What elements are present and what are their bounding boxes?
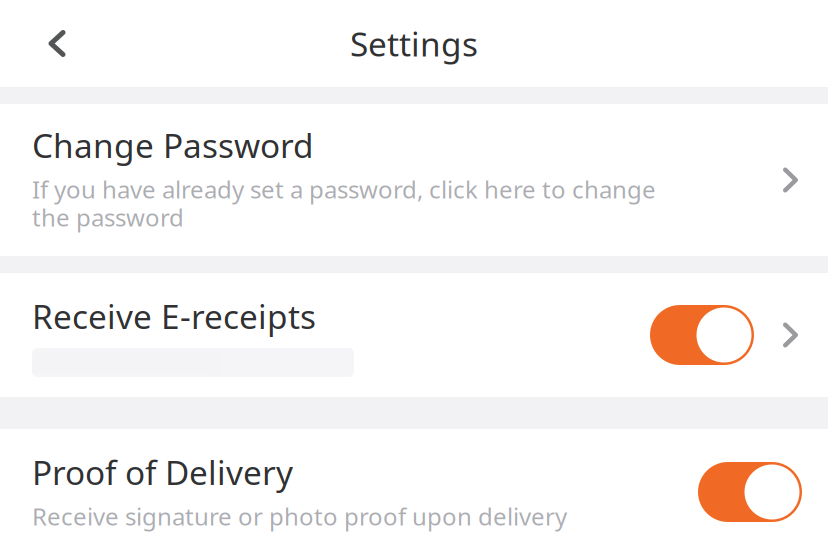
staticText: Change Password: [32, 123, 314, 167]
staticText: Receive E-receipts: [32, 294, 316, 338]
staticText: Receive signature or photo proof upon de…: [32, 500, 567, 532]
button[interactable]: Receive E-receipts, on: [650, 305, 754, 365]
staticText: If you have already set a password, clic…: [32, 173, 656, 233]
staticText: Proof of Delivery: [32, 450, 293, 494]
button[interactable]: Receive E-receipts: [0, 273, 828, 397]
button[interactable]: Back: [29, 13, 85, 73]
button[interactable]: Change Password: [0, 104, 828, 256]
staticText: Settings: [350, 21, 478, 66]
button[interactable]: Proof of Delivery: [0, 429, 828, 549]
button[interactable]: Proof of Delivery, on: [698, 462, 802, 522]
